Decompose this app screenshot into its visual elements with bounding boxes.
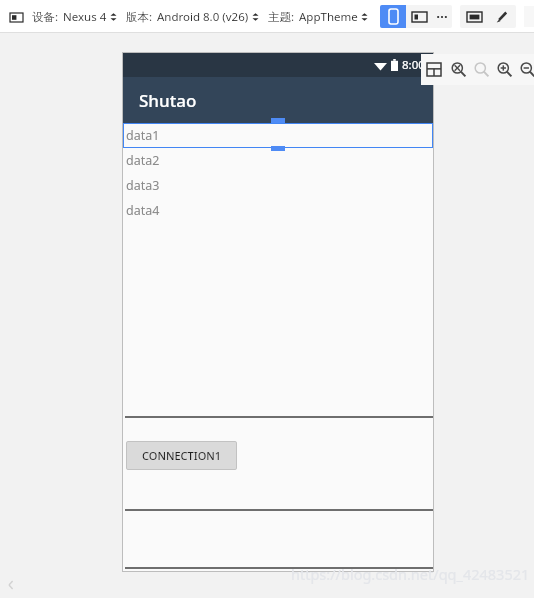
button[interactable]: Zoom in [493,54,516,85]
staticText: 设备: [32,9,59,25]
button[interactable]: Zoom to actual size [470,54,493,85]
button[interactable]: Collapse panel [4,578,18,592]
staticText: CONNECTION1 [142,448,222,463]
button[interactable]: Orientation landscape [460,5,488,28]
button[interactable]: data2 [123,148,433,173]
staticText: data3 [126,177,160,194]
button[interactable]: CONNECTION1 [126,441,237,470]
staticText: Nexus 4 [63,9,107,25]
button[interactable]: More view modes [432,5,452,28]
staticText: 8:00 [402,57,425,73]
staticText: data1 [126,127,160,144]
button[interactable]: data4 [123,198,433,223]
button[interactable]: Zoom out [516,54,534,85]
button[interactable]: Theme editor [488,5,516,28]
staticText: 主题: [268,9,295,25]
staticText: data4 [126,202,160,219]
staticText: AppTheme [299,9,358,25]
staticText: Android 8.0 (v26) [157,9,249,25]
button[interactable]: Blueprint view [406,5,432,28]
button[interactable]: data1 [123,123,433,148]
button[interactable]: 主题: [268,6,368,28]
button[interactable]: Device preview mode [7,8,25,26]
button[interactable]: Design view [380,5,406,28]
staticText: Shutao [139,89,197,112]
button[interactable]: Toggle panels [421,54,447,85]
button[interactable]: data3 [123,173,433,198]
button[interactable]: 版本: [126,6,259,28]
staticText: data2 [126,152,160,169]
button[interactable]: Zoom to fit [447,54,470,85]
staticText: 版本: [126,9,153,25]
button[interactable]: 设备: [32,6,117,28]
staticText: https://blog.csdn.net/qq_42483521 [291,564,530,584]
